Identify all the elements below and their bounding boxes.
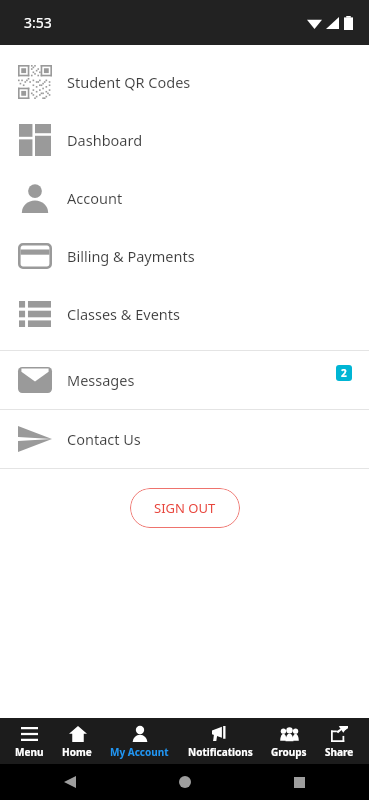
button[interactable]: Contact Us — [0, 410, 369, 468]
button[interactable]: Groups — [268, 721, 310, 762]
staticText: Home — [62, 745, 92, 759]
button[interactable]: Dashboard — [0, 111, 369, 169]
staticText: Student QR Codes — [67, 72, 191, 92]
staticText: SIGN OUT — [154, 499, 216, 517]
staticText: Billing & Payments — [67, 246, 195, 266]
staticText: Classes & Events — [67, 304, 180, 324]
button[interactable]: Back — [55, 767, 85, 797]
button[interactable]: Menu — [12, 721, 47, 762]
button[interactable]: Billing & Payments — [0, 227, 369, 285]
staticText: Account — [67, 188, 123, 208]
staticText: Menu — [15, 745, 44, 759]
staticText: 2 — [341, 366, 347, 380]
button[interactable]: SIGN OUT — [130, 488, 240, 528]
button[interactable]: Recent apps — [284, 767, 314, 797]
button[interactable]: Share — [322, 721, 357, 762]
staticText: Groups — [271, 745, 307, 759]
button[interactable]: Student QR Codes — [0, 53, 369, 111]
staticText: Contact Us — [67, 429, 141, 449]
button[interactable]: Classes & Events — [0, 285, 369, 343]
button[interactable]: Account — [0, 169, 369, 227]
staticText: My Account — [110, 745, 169, 759]
button[interactable]: Notifications — [185, 721, 256, 762]
button[interactable]: Messages — [0, 351, 369, 409]
button[interactable]: Home — [170, 767, 200, 797]
staticText: Messages — [67, 370, 135, 390]
button[interactable]: My Account — [107, 721, 172, 762]
staticText: Dashboard — [67, 130, 143, 150]
button[interactable]: Home — [59, 721, 95, 762]
staticText: 3:53 — [24, 13, 52, 32]
staticText: Share — [325, 745, 354, 759]
staticText: Notifications — [188, 745, 253, 759]
